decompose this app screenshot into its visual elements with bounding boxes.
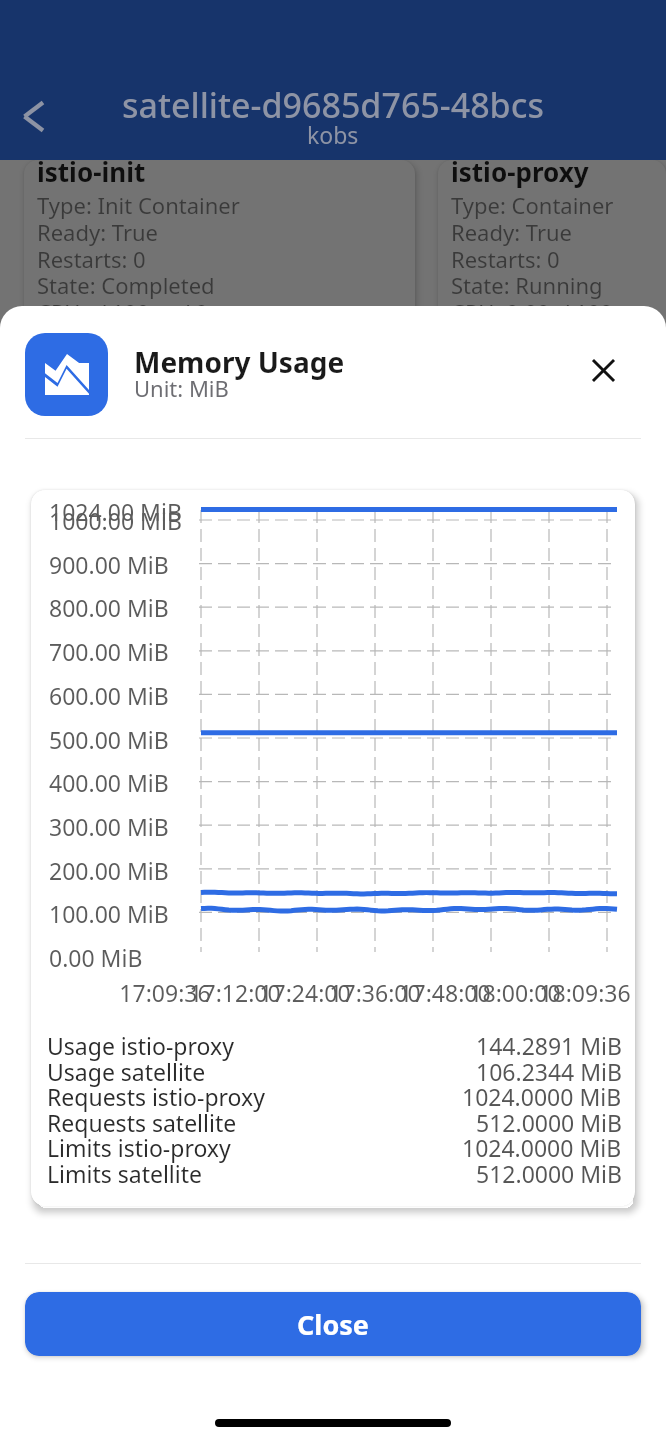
staticText: 17:24:00 [259,977,351,1008]
staticText: 106.2344 MiB [476,1056,622,1087]
staticText: 300.00 MiB [49,811,169,842]
staticText: istio-proxy [451,160,589,189]
staticText: 700.00 MiB [49,636,169,667]
staticText: 17:12:00 [189,977,281,1008]
staticText: istio-init [37,160,146,189]
staticText: CPU: 0.00 / 100 [451,297,613,327]
button[interactable]: Close dialog [580,347,626,393]
staticText: State: Running [451,270,603,300]
staticText: Usage istio-proxy [47,1030,234,1061]
staticText: 512.0000 MiB [476,1107,622,1138]
staticText: Usage satellite [47,1056,206,1087]
staticText: 500.00 MiB [49,724,169,755]
staticText: 1024.0000 MiB [462,1132,622,1163]
staticText: 1000.00 MiB [49,505,182,536]
staticText: kobs [307,119,359,150]
staticText: State: Completed [37,270,215,300]
staticText: 17:09:36 [119,977,211,1008]
staticText: Ready: True [37,217,159,247]
staticText: 18:00:00 [469,977,561,1008]
staticText: 200.00 MiB [49,855,169,886]
staticText: satellite-d9685d765-48bcs [122,82,544,128]
staticText: 17:36:00 [329,977,421,1008]
staticText: 18:09:36 [539,977,631,1008]
button[interactable]: Close [25,1292,641,1356]
staticText: 600.00 MiB [49,680,169,711]
staticText: Restarts: 0 [451,244,560,274]
staticText: 512.0000 MiB [476,1158,622,1189]
staticText: 144.2891 MiB [476,1030,622,1061]
staticText: Type: Container [451,190,614,220]
staticText: 400.00 MiB [49,767,169,798]
staticText: CPU: / 100m / 0 [37,297,208,327]
staticText: 17:48:00 [399,977,491,1008]
staticText: 800.00 MiB [49,592,169,623]
staticText: 0.00 MiB [49,942,143,973]
staticText: 1024.00 MiB [49,496,182,527]
staticText: Limits istio-proxy [47,1132,231,1163]
staticText: Memory Usage [134,343,345,381]
staticText: 1024.0000 MiB [462,1081,622,1112]
staticText: Ready: True [451,217,573,247]
staticText: Type: Init Container [37,190,240,220]
staticText: Unit: MiB [134,373,229,403]
staticText: Close [297,1306,369,1343]
staticText: Limits satellite [47,1158,202,1189]
staticText: Requests satellite [47,1107,237,1138]
button[interactable]: Back [9,92,57,140]
staticText: Requests istio-proxy [47,1081,265,1112]
staticText: 900.00 MiB [49,549,169,580]
staticText: 100.00 MiB [49,898,169,929]
staticText: Restarts: 0 [37,244,146,274]
